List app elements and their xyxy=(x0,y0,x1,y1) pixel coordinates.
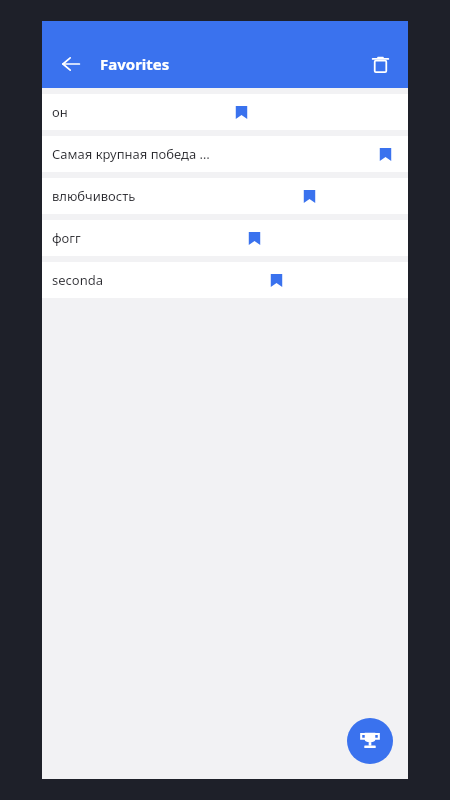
button[interactable]: seconda xyxy=(42,262,408,298)
button[interactable]: Back xyxy=(54,47,88,81)
button[interactable]: Remove bookmark xyxy=(241,225,267,251)
staticText: seconda xyxy=(52,271,103,289)
staticText: Favorites xyxy=(100,54,170,74)
button[interactable]: Achievements xyxy=(347,718,393,764)
staticText: Самая крупная победа в лотерее xyxy=(52,145,212,163)
button[interactable]: Remove bookmark xyxy=(372,141,398,167)
button[interactable]: он xyxy=(42,94,408,130)
staticText: влюбчивость xyxy=(52,187,136,205)
button[interactable]: фогг xyxy=(42,220,408,256)
button[interactable]: влюбчивость xyxy=(42,178,408,214)
button[interactable]: Remove bookmark xyxy=(263,267,289,293)
staticText: он xyxy=(52,103,68,121)
button[interactable]: Delete all favorites xyxy=(363,47,397,81)
button[interactable]: Remove bookmark xyxy=(228,99,254,125)
button[interactable]: Remove bookmark xyxy=(296,183,322,209)
staticText: фогг xyxy=(52,229,81,247)
button[interactable]: Самая крупная победа в лотерее xyxy=(42,136,408,172)
